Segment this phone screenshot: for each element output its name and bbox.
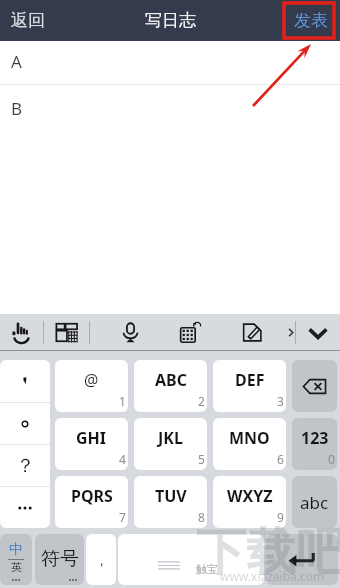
staticText: 9 (277, 509, 284, 525)
staticText: MNO (229, 427, 270, 449)
staticText: TUV (155, 485, 187, 507)
button[interactable]: abc (292, 476, 337, 528)
button[interactable]: @ (55, 360, 128, 412)
staticText: GHI (76, 427, 107, 449)
staticText: @ (84, 369, 99, 391)
button[interactable]: GHI (55, 418, 128, 470)
staticText: 0 (328, 451, 335, 467)
button[interactable]: DEF (213, 360, 286, 412)
button[interactable]: B (0, 85, 340, 314)
button[interactable]: A (0, 41, 340, 84)
button[interactable]: PQRS (55, 476, 128, 528)
staticText: ？ (16, 454, 35, 478)
button[interactable]: Period (0, 403, 50, 444)
staticText: A (11, 50, 22, 73)
staticText: 6 (277, 451, 284, 467)
button[interactable]: Hide keyboard (296, 314, 340, 351)
button[interactable]: Enter (266, 534, 338, 585)
button[interactable]: Note (232, 314, 272, 351)
button[interactable]: Keypad (171, 314, 211, 351)
staticText: B (11, 97, 23, 120)
button[interactable]: Delete (292, 360, 337, 412)
staticText: www.xiazaiba.com (220, 568, 325, 584)
button[interactable]: ？ (0, 445, 50, 486)
staticText: 触宝 (196, 562, 218, 576)
staticText: 7 (119, 509, 126, 525)
staticText: 英 (11, 560, 22, 574)
staticText: 1 (119, 393, 126, 409)
staticText: 123 (301, 427, 329, 449)
staticText: 发表 (294, 10, 328, 31)
staticText: 3 (277, 393, 284, 409)
button[interactable]: Voice input (110, 314, 150, 351)
staticText: 写日志 (145, 10, 196, 31)
button[interactable]: 123 (292, 418, 337, 470)
button[interactable]: Ellipsis (0, 487, 50, 528)
button[interactable]: Switch language (0, 534, 32, 585)
button[interactable]: 返回 (0, 2, 56, 39)
staticText: DEF (235, 369, 265, 391)
staticText: JKL (158, 427, 183, 449)
staticText: 2 (198, 393, 205, 409)
button[interactable]: TUV (134, 476, 207, 528)
staticText: 符号 (41, 547, 79, 571)
button[interactable]: ， (86, 534, 116, 585)
button[interactable]: More tools (287, 314, 295, 351)
button[interactable]: MNO (213, 418, 286, 470)
button[interactable]: 符号 (35, 534, 84, 585)
button[interactable]: JKL (134, 418, 207, 470)
button[interactable]: ABC (134, 360, 207, 412)
staticText: 4 (119, 451, 126, 467)
staticText: 下载吧 (196, 521, 340, 584)
staticText: WXYZ (227, 485, 273, 507)
button[interactable]: WXYZ (213, 476, 286, 528)
button[interactable]: 发表 (289, 4, 333, 37)
button[interactable]: Handwriting (0, 314, 43, 351)
staticText: 返回 (11, 10, 45, 31)
staticText: ABC (155, 369, 187, 391)
staticText: 中 (9, 541, 23, 559)
staticText: abc (300, 491, 329, 514)
staticText: 5 (198, 451, 205, 467)
staticText: ， (95, 552, 108, 568)
button[interactable]: Pinyin layout (44, 314, 89, 351)
button[interactable]: Space (118, 534, 264, 585)
staticText: PQRS (71, 485, 113, 507)
staticText: 8 (198, 509, 205, 525)
button[interactable]: Comma (0, 360, 50, 402)
